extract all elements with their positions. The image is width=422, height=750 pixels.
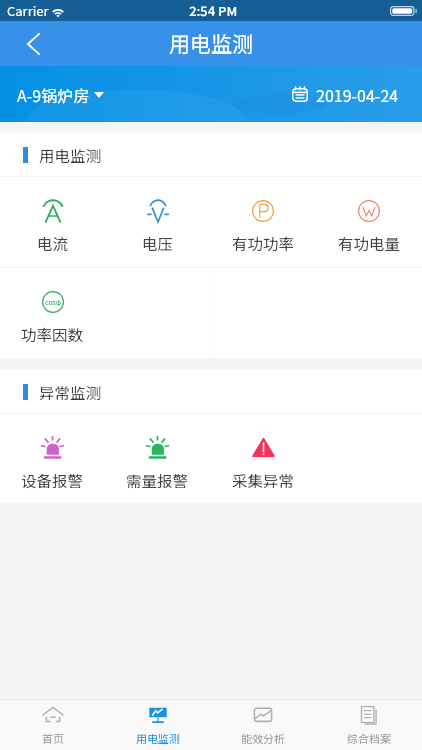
staticText: 电流 — [37, 232, 69, 254]
button[interactable]: 采集异常 — [210, 414, 316, 503]
staticText: 首页 — [42, 730, 64, 746]
button[interactable]: 设备报警 — [0, 414, 105, 503]
staticText: 需量报警 — [126, 469, 189, 491]
staticText: 有功功率 — [232, 232, 295, 254]
button[interactable]: 能效分析 — [210, 700, 316, 750]
staticText: 用电监测 — [169, 28, 253, 58]
button[interactable]: cosφ — [0, 268, 105, 358]
staticText: cosφ — [45, 297, 62, 307]
staticText: 功率因数 — [21, 323, 84, 345]
staticText: Carrier — [7, 1, 49, 20]
button[interactable]: 电流 — [0, 177, 105, 267]
staticText: 有功电量 — [338, 232, 401, 254]
staticText: 电压 — [142, 232, 174, 254]
button[interactable]: 电压 — [105, 177, 210, 267]
staticText: 2019-04-24 — [316, 83, 399, 106]
staticText: 异常监测 — [39, 381, 102, 403]
button[interactable]: 需量报警 — [105, 414, 210, 503]
button[interactable]: 有功功率 — [210, 177, 316, 267]
button[interactable]: 综合档案 — [316, 700, 422, 750]
button[interactable]: 首页 — [0, 700, 105, 750]
button[interactable]: Back — [11, 21, 56, 66]
staticText: 采集异常 — [232, 469, 295, 491]
button[interactable]: A-9锅炉房 — [17, 83, 104, 106]
staticText: 用电监测 — [136, 730, 180, 746]
staticText: 2:54 PM — [189, 1, 238, 20]
staticText: A-9锅炉房 — [17, 83, 90, 106]
button[interactable]: 有功电量 — [316, 177, 422, 267]
staticText: 综合档案 — [347, 730, 391, 746]
button[interactable]: 2019-04-24 — [292, 83, 399, 106]
staticText: 用电监测 — [39, 144, 102, 166]
button[interactable]: 用电监测 — [105, 700, 210, 750]
staticText: 能效分析 — [241, 730, 285, 746]
staticText: 设备报警 — [21, 469, 84, 491]
